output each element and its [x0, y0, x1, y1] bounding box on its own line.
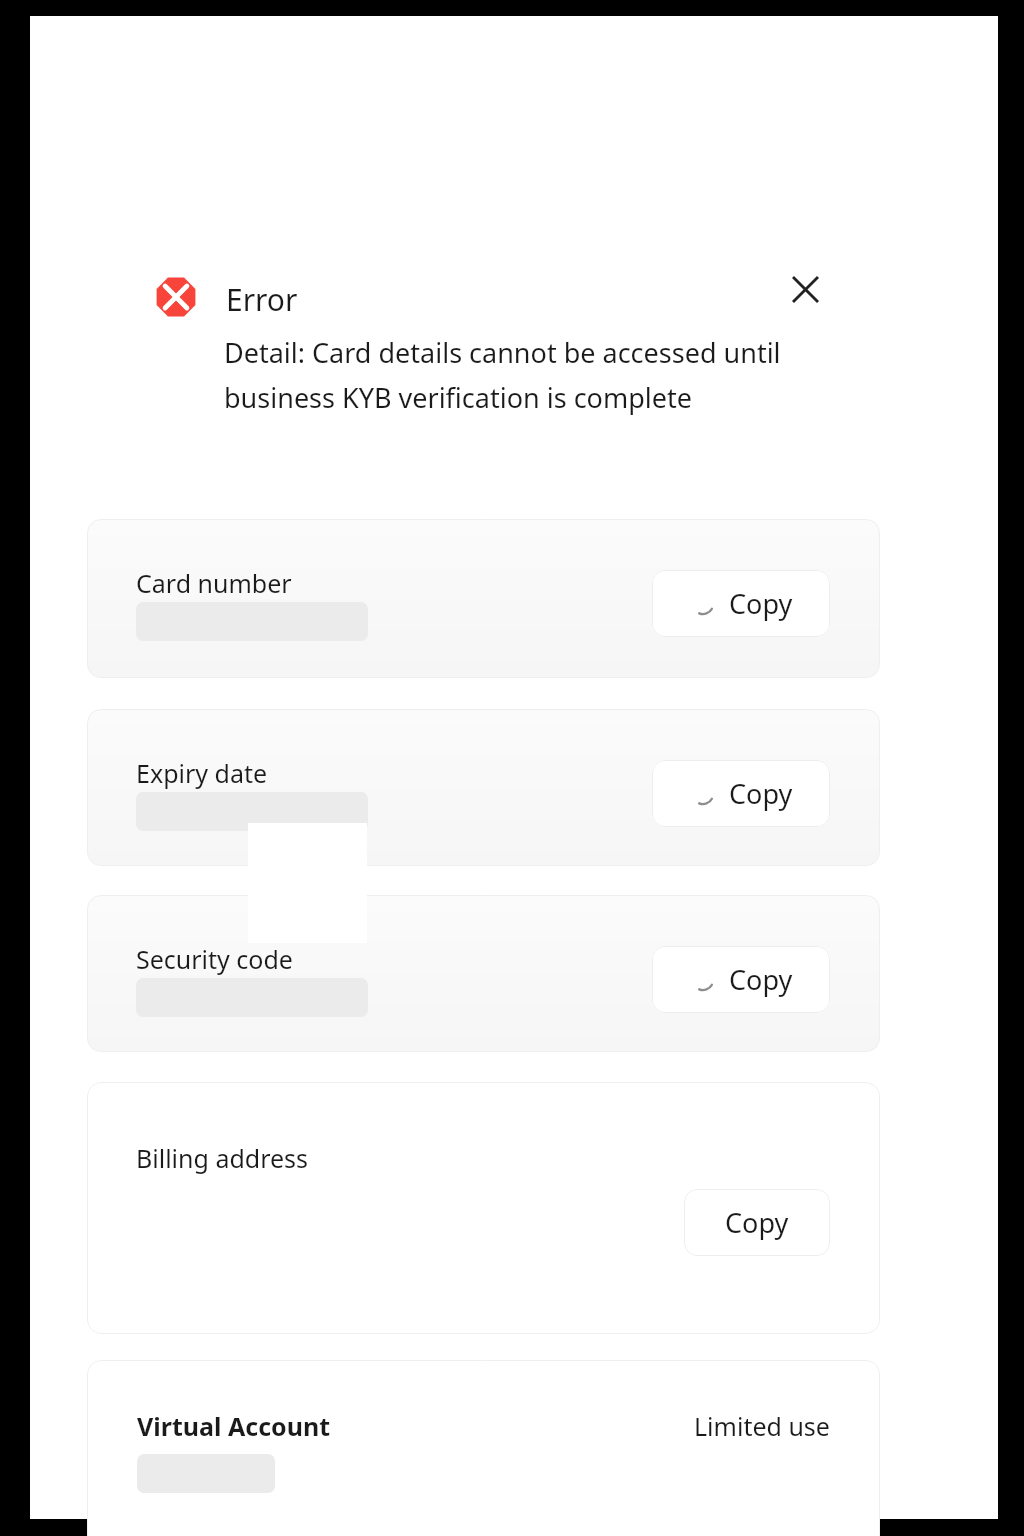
button[interactable]: Virtual Account	[87, 1360, 880, 1536]
button[interactable]: Close	[776, 260, 834, 318]
staticText: Copy	[729, 775, 793, 812]
staticText: Billing address	[136, 1141, 309, 1175]
staticText: Card number	[136, 566, 292, 600]
staticText: Copy	[729, 961, 793, 998]
button[interactable]: Security code	[87, 895, 880, 1052]
button[interactable]: Billing address	[87, 1082, 880, 1334]
staticText: Security code	[136, 942, 293, 976]
staticText: Virtual Account	[137, 1409, 331, 1443]
button[interactable]: Expiry date	[87, 709, 880, 866]
button[interactable]: Card number	[87, 519, 880, 678]
button[interactable]: Copy	[652, 760, 830, 827]
staticText: Expiry date	[136, 756, 268, 790]
button[interactable]: Copy	[652, 946, 830, 1013]
staticText: Detail: Card details cannot be accessed …	[224, 334, 824, 416]
button[interactable]: Copy	[652, 570, 830, 637]
staticText: Copy	[725, 1204, 789, 1241]
staticText: Limited use	[694, 1409, 830, 1443]
button[interactable]: Copy	[684, 1189, 830, 1256]
staticText: Error	[226, 279, 298, 320]
staticText: Copy	[729, 585, 793, 622]
